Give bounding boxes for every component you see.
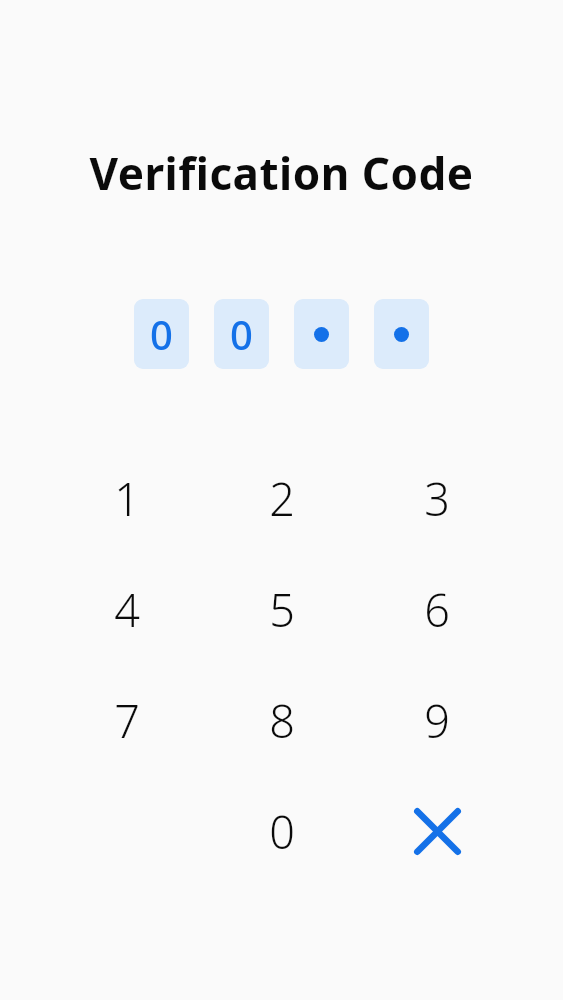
button[interactable]: 0 xyxy=(134,299,189,369)
button[interactable]: 0 xyxy=(227,776,337,887)
button[interactable]: 1 xyxy=(72,443,182,554)
button[interactable] xyxy=(294,299,349,369)
staticText: 5 xyxy=(269,579,295,640)
button[interactable]: 3 xyxy=(382,443,492,554)
staticText: 1 xyxy=(114,468,140,529)
button[interactable]: 0 xyxy=(214,299,269,369)
button[interactable]: 2 xyxy=(227,443,337,554)
button[interactable] xyxy=(374,299,429,369)
staticText: 2 xyxy=(269,468,295,529)
button[interactable]: 4 xyxy=(72,554,182,665)
staticText: 0 xyxy=(269,801,295,862)
staticText: 7 xyxy=(114,690,140,751)
button[interactable]: 5 xyxy=(227,554,337,665)
button[interactable]: 8 xyxy=(227,665,337,776)
staticText: 4 xyxy=(114,579,140,640)
button[interactable]: Delete xyxy=(382,776,492,887)
staticText: 0 xyxy=(230,307,253,361)
staticText: 6 xyxy=(424,579,450,640)
button[interactable]: 9 xyxy=(382,665,492,776)
button[interactable]: 6 xyxy=(382,554,492,665)
staticText: 0 xyxy=(150,307,173,361)
button[interactable]: 7 xyxy=(72,665,182,776)
staticText: Verification Code xyxy=(89,143,474,203)
staticText: 8 xyxy=(269,690,295,751)
staticText: 3 xyxy=(424,468,450,529)
staticText: 9 xyxy=(424,690,450,751)
